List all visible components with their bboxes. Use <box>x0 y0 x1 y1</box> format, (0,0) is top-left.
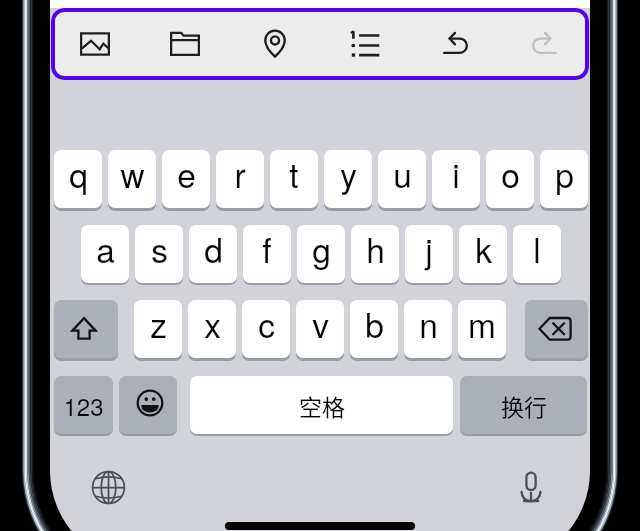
button[interactable]: n <box>404 300 452 358</box>
staticText: l <box>533 225 541 273</box>
button[interactable]: r <box>216 150 264 208</box>
button[interactable]: a <box>81 225 129 283</box>
button[interactable]: k <box>459 225 507 283</box>
button[interactable]: w <box>108 150 156 208</box>
button[interactable]: z <box>134 300 182 358</box>
staticText: w <box>120 150 145 198</box>
button[interactable]: c <box>242 300 290 358</box>
button[interactable]: o <box>486 150 534 208</box>
staticText: t <box>289 150 299 198</box>
button[interactable]: Redo <box>515 11 575 76</box>
staticText: u <box>393 150 412 198</box>
button[interactable]: y <box>324 150 372 208</box>
button[interactable]: m <box>458 300 506 358</box>
staticText: 换行 <box>501 389 547 422</box>
button[interactable]: Backspace <box>525 300 588 358</box>
staticText: o <box>501 150 520 198</box>
staticText: k <box>475 225 492 273</box>
staticText: m <box>468 300 496 348</box>
staticText: v <box>312 300 329 348</box>
staticText: 空格 <box>299 389 345 422</box>
button[interactable]: Shift <box>54 300 118 358</box>
button[interactable]: i <box>432 150 480 208</box>
staticText: f <box>262 225 272 273</box>
staticText: p <box>555 150 574 198</box>
button[interactable]: h <box>351 225 399 283</box>
staticText: i <box>452 150 460 198</box>
staticText: g <box>312 225 331 273</box>
button[interactable]: d <box>189 225 237 283</box>
staticText: s <box>151 225 168 273</box>
button[interactable]: Voice input <box>511 466 551 506</box>
button[interactable]: Open folder <box>155 11 215 76</box>
button[interactable]: j <box>405 225 453 283</box>
button[interactable]: 123 <box>54 376 113 434</box>
staticText: z <box>150 300 167 348</box>
button[interactable]: b <box>350 300 398 358</box>
button[interactable]: t <box>270 150 318 208</box>
button[interactable]: Location <box>245 11 305 76</box>
staticText: a <box>96 225 115 273</box>
button[interactable]: Emoji <box>119 376 177 434</box>
button[interactable]: f <box>243 225 291 283</box>
button[interactable]: Undo <box>425 11 485 76</box>
staticText: y <box>340 150 357 198</box>
button[interactable]: e <box>162 150 210 208</box>
staticText: j <box>425 225 433 273</box>
button[interactable]: Format list <box>335 11 395 76</box>
staticText: x <box>204 300 221 348</box>
button[interactable]: 空格 <box>190 376 453 434</box>
button[interactable]: l <box>513 225 561 283</box>
staticText: d <box>204 225 223 273</box>
staticText: n <box>419 300 438 348</box>
staticText: r <box>234 150 246 198</box>
button[interactable]: g <box>297 225 345 283</box>
button[interactable]: Insert image <box>65 11 125 76</box>
button[interactable]: Change keyboard <box>88 467 128 507</box>
staticText: q <box>69 150 88 198</box>
button[interactable]: q <box>54 150 102 208</box>
button[interactable]: s <box>135 225 183 283</box>
staticText: e <box>177 150 196 198</box>
button[interactable]: p <box>540 150 588 208</box>
staticText: h <box>366 225 385 273</box>
staticText: 123 <box>63 388 104 422</box>
button[interactable]: 换行 <box>460 376 587 434</box>
button[interactable]: x <box>188 300 236 358</box>
button[interactable]: u <box>378 150 426 208</box>
button[interactable]: v <box>296 300 344 358</box>
staticText: b <box>365 300 384 348</box>
staticText: c <box>258 300 275 348</box>
